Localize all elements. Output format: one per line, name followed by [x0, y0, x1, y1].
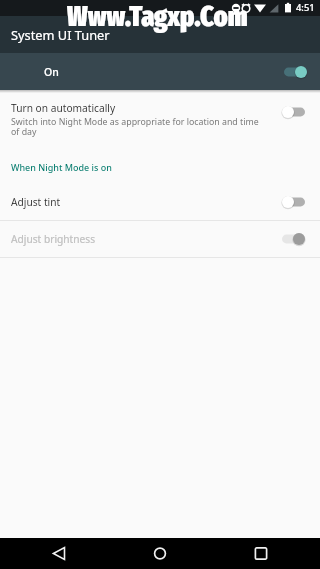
- button[interactable]: On: [0, 53, 320, 90]
- staticText: of day: [11, 126, 37, 138]
- staticText: When Night Mode is on: [11, 161, 112, 173]
- button[interactable]: Back: [38, 538, 80, 569]
- staticText: Switch into Night Mode as appropriate fo…: [11, 116, 259, 128]
- staticText: Turn on automatically: [11, 101, 116, 115]
- button[interactable]: Adjust brightness: [0, 221, 320, 257]
- staticText: Www.Tagxp.Com: [67, 0, 248, 33]
- staticText: Adjust brightness: [11, 232, 282, 246]
- staticText: 4:51: [296, 1, 315, 14]
- button[interactable]: Adjust tint: [0, 184, 320, 220]
- button[interactable]: Recent apps: [240, 538, 282, 569]
- staticText: System UI Tuner: [11, 26, 110, 43]
- button[interactable]: Home: [139, 538, 181, 569]
- staticText: Adjust tint: [11, 195, 282, 209]
- button[interactable]: Turn on automatically: [0, 101, 320, 138]
- staticText: On: [44, 65, 59, 79]
